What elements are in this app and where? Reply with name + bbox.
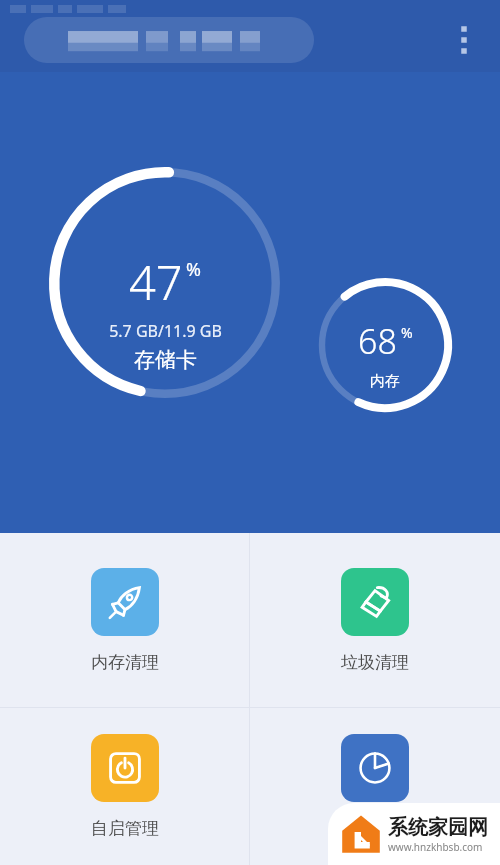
button[interactable]: 自启管理	[0, 708, 249, 865]
staticText: 内存	[370, 372, 400, 391]
staticText: 47	[129, 250, 183, 314]
button[interactable]: More options	[440, 16, 488, 64]
staticText: %	[401, 323, 413, 342]
staticText: %	[186, 257, 201, 282]
button[interactable]	[24, 17, 314, 63]
button[interactable]: 内存清理	[0, 533, 249, 707]
button[interactable]: 应用管理	[250, 708, 500, 865]
staticText: 系统家园网	[388, 815, 488, 840]
staticText: 68	[358, 318, 397, 364]
staticText: 应用管理	[341, 818, 409, 839]
staticText: www.hnzkhbsb.com	[388, 840, 483, 854]
staticText: 内存清理	[91, 652, 159, 673]
button[interactable]: 垃圾清理	[250, 533, 500, 707]
staticText: 自启管理	[91, 818, 159, 839]
staticText: 存储卡	[134, 347, 197, 373]
staticText: 垃圾清理	[341, 652, 409, 673]
staticText: 5.7 GB/11.9 GB	[109, 320, 222, 342]
